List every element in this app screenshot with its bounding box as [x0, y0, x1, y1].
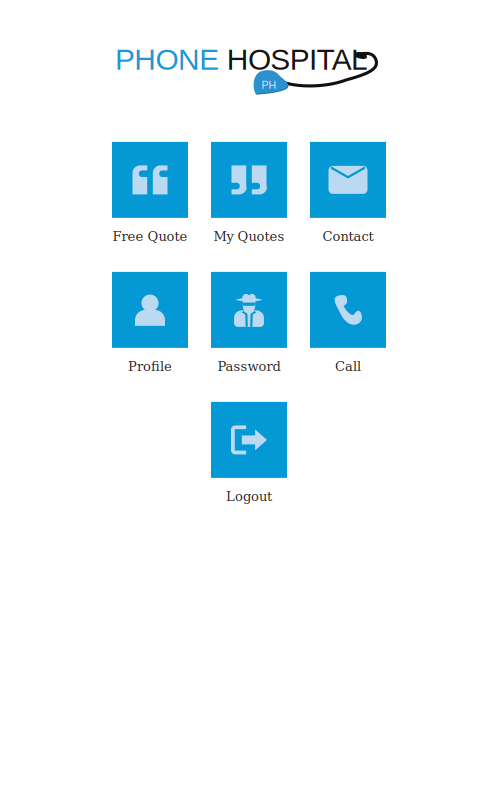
button[interactable]: Profile: [112, 272, 188, 374]
staticText: Free Quote: [112, 229, 187, 244]
button[interactable]: Free Quote: [112, 142, 188, 244]
staticText: PH: [261, 79, 276, 91]
staticText: Profile: [128, 359, 172, 374]
staticText: PHONE: [115, 43, 219, 76]
staticText: Password: [217, 359, 280, 374]
staticText: Contact: [322, 229, 373, 244]
button[interactable]: My Quotes: [211, 142, 287, 244]
staticText: Logout: [226, 489, 272, 504]
staticText: My Quotes: [213, 229, 284, 244]
button[interactable]: Call: [310, 272, 386, 374]
button[interactable]: Password: [211, 272, 287, 374]
button[interactable]: Logout: [211, 402, 287, 504]
staticText: HOSPITAL: [219, 43, 368, 76]
staticText: Call: [335, 359, 361, 374]
button[interactable]: Contact: [310, 142, 386, 244]
